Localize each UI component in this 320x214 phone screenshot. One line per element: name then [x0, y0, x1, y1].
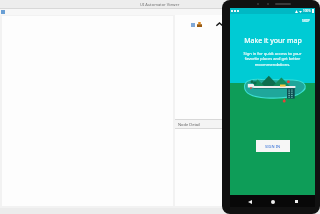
staticText: Node Detail	[178, 122, 201, 127]
button[interactable]: SKIP	[302, 18, 310, 23]
staticText: 100%	[303, 9, 311, 13]
button[interactable]: Back	[245, 197, 254, 206]
staticText: Make it your map	[244, 36, 302, 46]
staticText: UI Automator Viewer	[140, 2, 180, 7]
staticText: Sign in for quick access to your favorit…	[237, 51, 308, 67]
button[interactable]: Previous	[215, 20, 224, 29]
staticText: SIGN IN	[265, 144, 281, 149]
button[interactable]	[175, 129, 319, 206]
button[interactable]: Home	[268, 197, 277, 206]
button[interactable]: SIGN IN	[256, 140, 290, 152]
button[interactable]: Recent apps	[292, 197, 301, 206]
button[interactable]: Device screenshot with compressed hierar…	[197, 22, 202, 27]
staticText: SKIP	[302, 18, 310, 23]
button[interactable]: Device screenshot	[175, 15, 319, 119]
